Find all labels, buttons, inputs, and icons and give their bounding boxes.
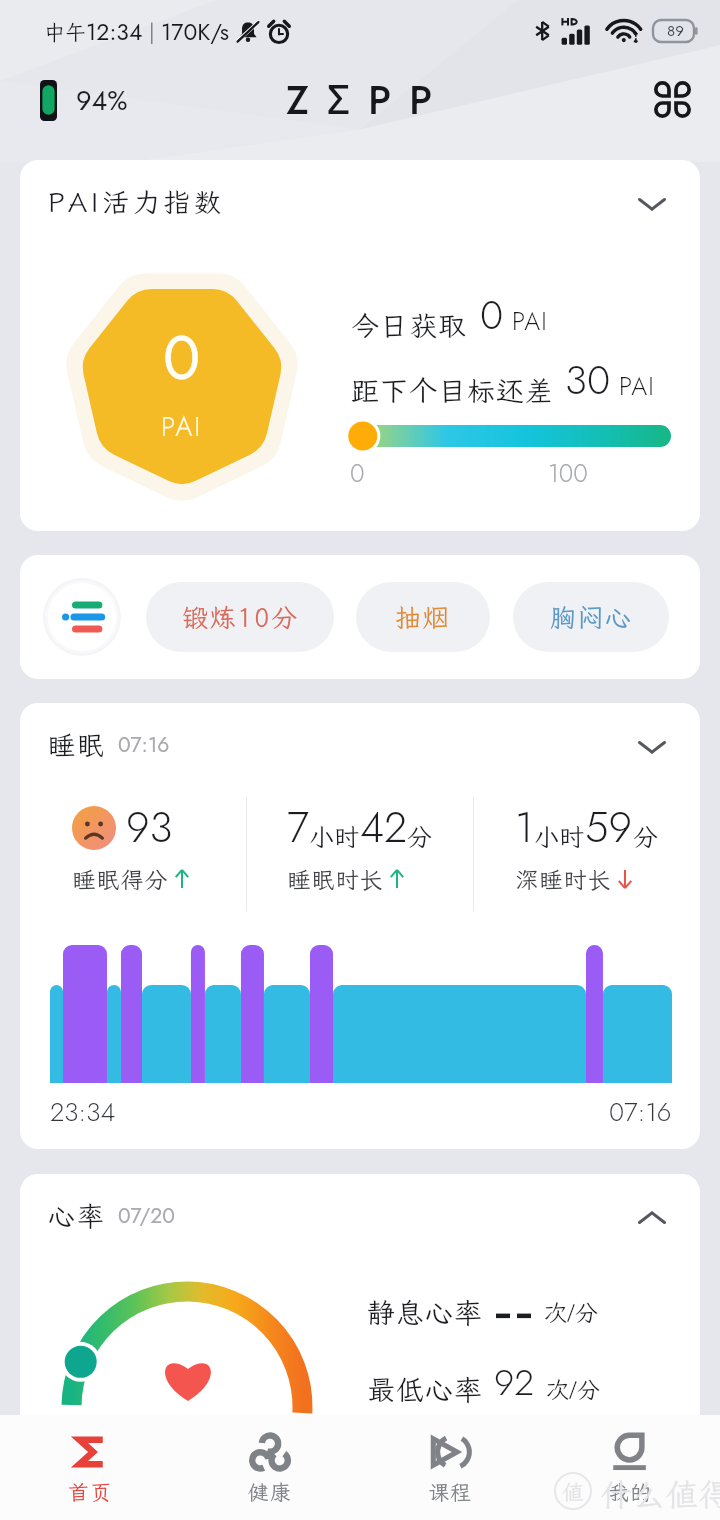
staticText: 抽烟 — [395, 600, 451, 634]
staticText: 小时 — [309, 820, 360, 853]
button[interactable]: 94% — [30, 80, 134, 121]
staticText: 锻炼10分 — [182, 600, 299, 634]
staticText: PAI — [512, 303, 548, 339]
staticText: 07:16 — [609, 1093, 672, 1131]
button[interactable]: 胸闷心 — [513, 582, 669, 652]
staticText: PAI — [161, 407, 203, 446]
staticText: 0 — [350, 455, 365, 491]
staticText: 最低心率 — [367, 1371, 484, 1408]
button[interactable]: Expand heart rate — [626, 1192, 678, 1244]
staticText: 课程 — [428, 1478, 472, 1506]
staticText: 分 — [407, 820, 433, 853]
button[interactable]: 首页 — [0, 1415, 180, 1520]
staticText: 07/20 — [118, 1201, 175, 1231]
staticText: PAI — [619, 368, 655, 404]
button[interactable]: Record list — [20, 555, 700, 679]
staticText: | — [143, 17, 161, 47]
staticText: 94% — [76, 81, 128, 120]
staticText: 59 — [585, 797, 633, 858]
staticText: 静息心率 — [367, 1294, 484, 1331]
staticText: 睡眠得分 — [72, 864, 168, 894]
staticText: 0 — [163, 313, 201, 403]
button[interactable]: 锻炼10分 — [146, 582, 334, 652]
staticText: 首页 — [68, 1478, 112, 1506]
staticText: 我的 — [608, 1478, 652, 1506]
staticText: 93 — [126, 797, 173, 858]
staticText: 睡眠时长 — [287, 864, 383, 894]
staticText: 小时 — [534, 820, 585, 853]
staticText: 心率 — [48, 1198, 106, 1234]
staticText: 次/分 — [546, 1374, 601, 1404]
button[interactable]: 课程 — [360, 1415, 540, 1520]
button[interactable]: 心率 — [20, 1174, 700, 1474]
button[interactable]: Apps — [646, 73, 698, 125]
staticText: 分 — [633, 820, 659, 853]
staticText: 30 — [565, 351, 611, 409]
staticText: 今日获取 — [351, 307, 468, 344]
staticText: PAI活力指数 — [48, 184, 225, 220]
staticText: 健康 — [248, 1478, 292, 1506]
staticText: 89 — [667, 20, 684, 42]
button[interactable]: Record list — [51, 586, 113, 648]
staticText: 07:16 — [118, 730, 170, 760]
staticText: 7 — [287, 797, 309, 858]
staticText: 胸闷心 — [550, 600, 633, 634]
staticText: 92 — [494, 1356, 534, 1408]
button[interactable]: 抽烟 — [356, 582, 490, 652]
staticText: 1 — [515, 797, 534, 858]
staticText: 深睡时长 — [515, 864, 611, 894]
staticText: 距下个目标还差 — [351, 372, 555, 409]
staticText: 睡眠 — [48, 727, 106, 763]
staticText: 42 — [360, 797, 407, 858]
staticText: 值 — [562, 1477, 585, 1506]
button[interactable]: 健康 — [180, 1415, 360, 1520]
staticText: 中午 — [44, 18, 86, 46]
staticText: 100 — [548, 455, 588, 491]
staticText: 23:34 — [50, 1093, 116, 1131]
staticText: 什么值得买 — [600, 1473, 720, 1515]
staticText: 0 — [480, 286, 504, 344]
staticText: 170K/s — [161, 15, 230, 48]
button[interactable]: 我的 — [540, 1415, 720, 1520]
button[interactable]: Collapse PAI — [626, 178, 678, 230]
staticText: 12:34 — [86, 15, 143, 48]
staticText: Z Σ P P — [286, 71, 436, 129]
button[interactable]: PAI活力指数 — [20, 160, 700, 531]
button[interactable]: 睡眠 — [20, 703, 700, 1149]
button[interactable]: Collapse sleep — [626, 721, 678, 773]
staticText: 次/分 — [544, 1297, 599, 1327]
